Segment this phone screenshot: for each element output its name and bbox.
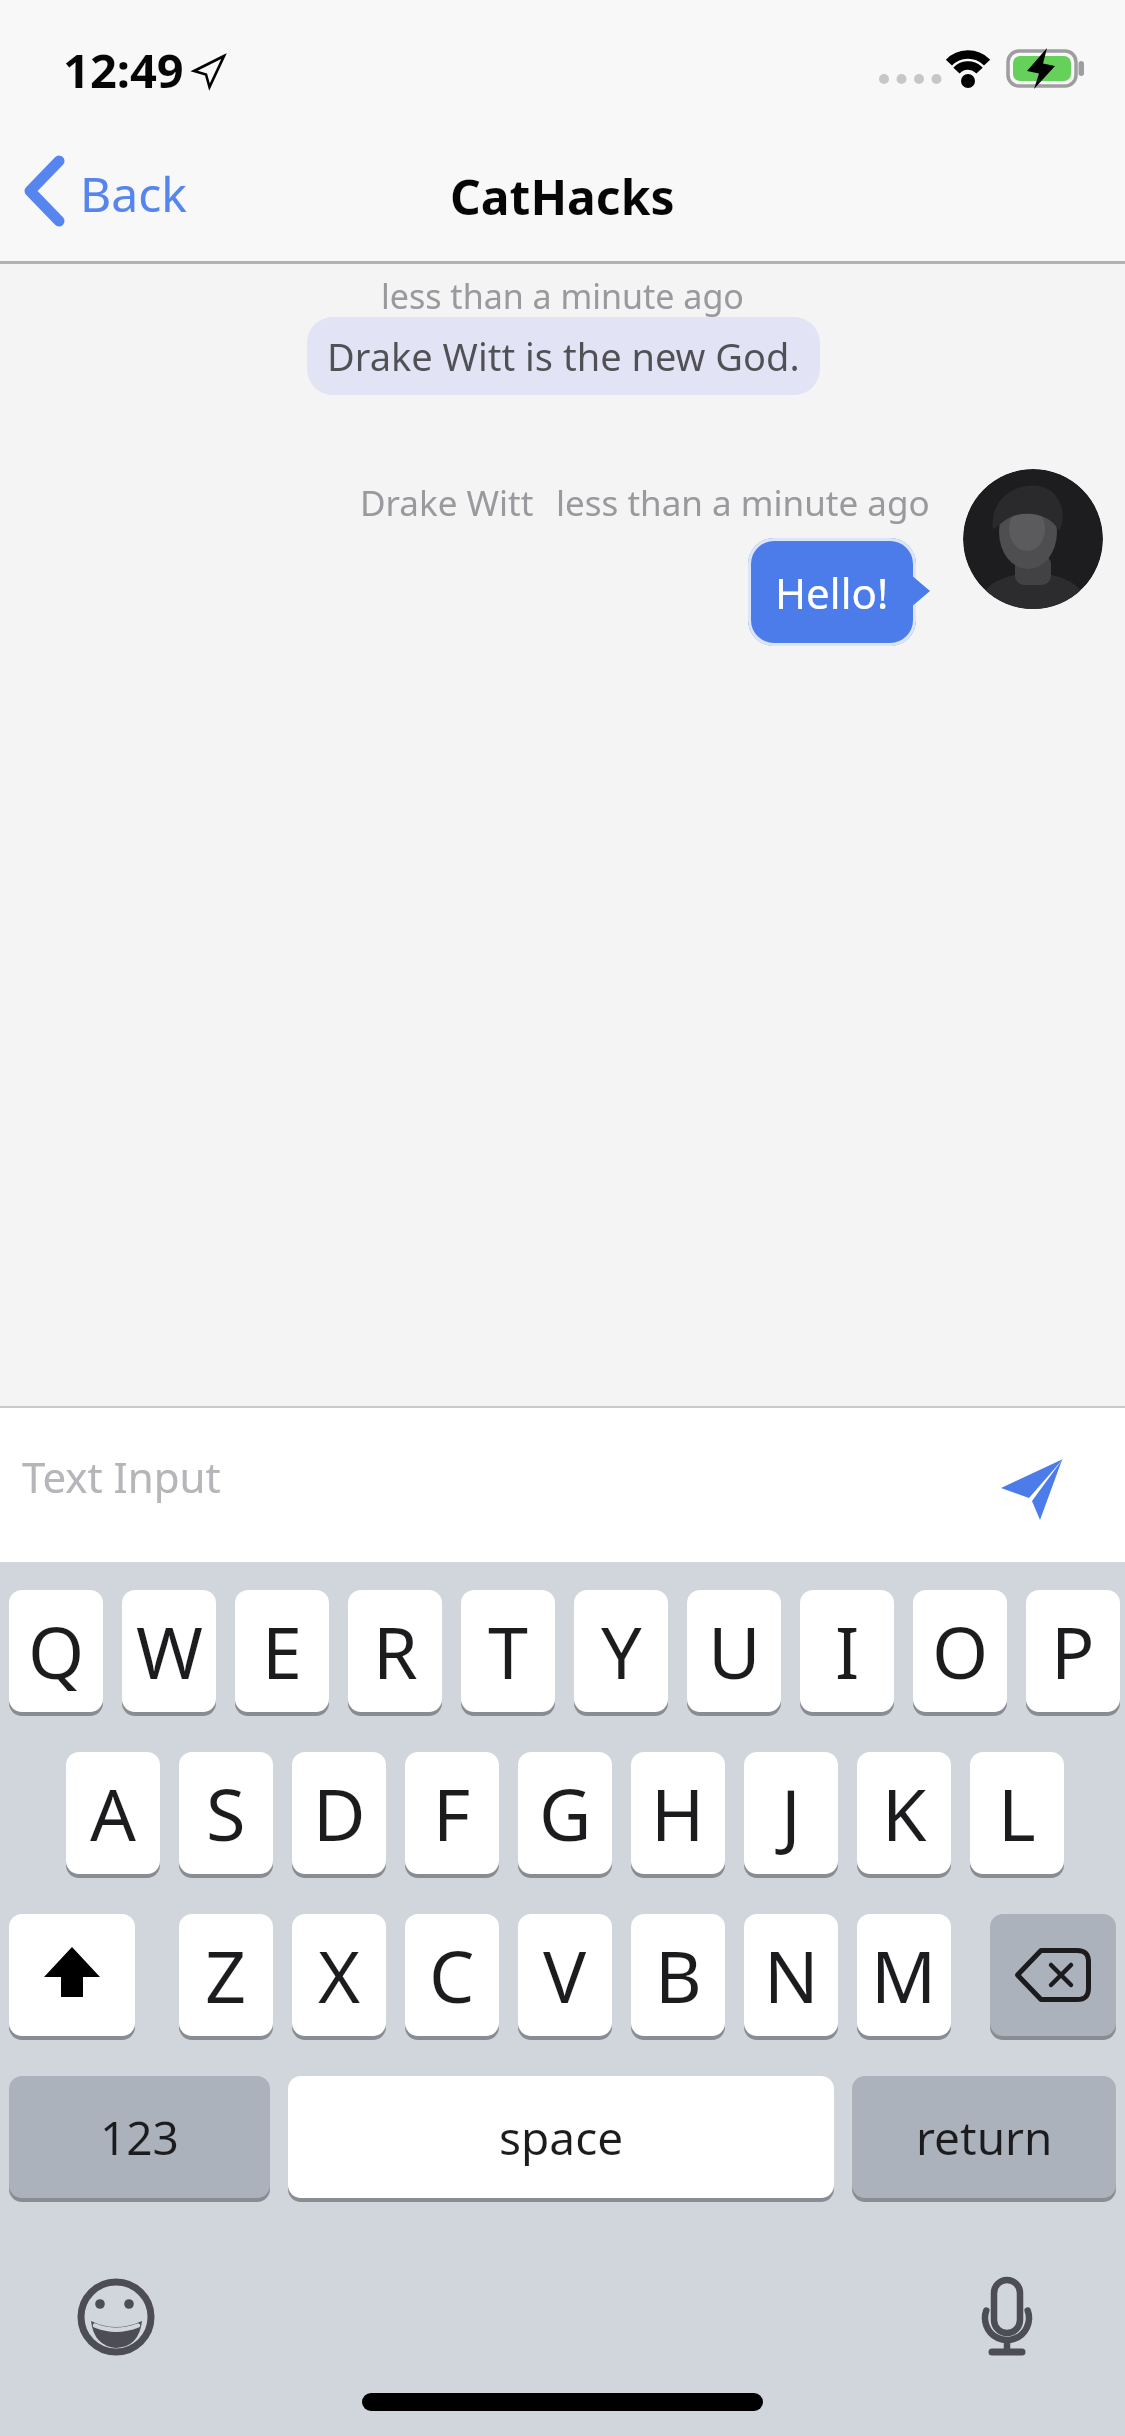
button[interactable]: V bbox=[518, 1914, 612, 2036]
button[interactable]: A bbox=[66, 1752, 160, 1874]
staticText: R bbox=[373, 1602, 418, 1700]
staticText: C bbox=[429, 1926, 475, 2024]
button[interactable]: R bbox=[348, 1590, 442, 1712]
button[interactable]: Back bbox=[20, 150, 220, 240]
staticText: X bbox=[318, 1926, 361, 2024]
staticText: P bbox=[1051, 1602, 1095, 1700]
staticText: Q bbox=[28, 1602, 85, 1700]
button[interactable]: W bbox=[122, 1590, 216, 1712]
button[interactable] bbox=[0, 1406, 1125, 1562]
button[interactable]: G bbox=[518, 1752, 612, 1874]
staticText: W bbox=[136, 1602, 203, 1700]
button[interactable]: B bbox=[631, 1914, 725, 2036]
button[interactable]: return bbox=[852, 2076, 1116, 2198]
staticText: T bbox=[488, 1602, 529, 1700]
staticText: CatHacks bbox=[450, 164, 675, 229]
staticText: return bbox=[916, 2106, 1053, 2169]
button[interactable]: P bbox=[1026, 1590, 1120, 1712]
staticText: K bbox=[882, 1764, 927, 1862]
staticText: less than a minute ago bbox=[381, 273, 744, 319]
staticText: Back bbox=[80, 161, 187, 226]
staticText: less than a minute ago bbox=[556, 479, 930, 527]
staticText: U bbox=[708, 1602, 761, 1700]
staticText: 12:49 bbox=[63, 38, 184, 102]
staticText: G bbox=[539, 1764, 592, 1862]
staticText: H bbox=[651, 1764, 705, 1862]
staticText: A bbox=[90, 1764, 137, 1862]
staticText: E bbox=[262, 1602, 303, 1700]
button[interactable]: Z bbox=[179, 1914, 273, 2036]
button[interactable] bbox=[995, 1455, 1075, 1535]
button[interactable]: X bbox=[292, 1914, 386, 2036]
staticText: J bbox=[781, 1764, 801, 1862]
button[interactable]: C bbox=[405, 1914, 499, 2036]
staticText: Drake Witt bbox=[360, 479, 534, 527]
staticText: I bbox=[835, 1602, 860, 1700]
button[interactable]: space bbox=[288, 2076, 834, 2198]
button[interactable]: J bbox=[744, 1752, 838, 1874]
staticText: V bbox=[543, 1926, 587, 2024]
button[interactable]: U bbox=[687, 1590, 781, 1712]
button[interactable]: Y bbox=[574, 1590, 668, 1712]
button[interactable]: D bbox=[292, 1752, 386, 1874]
button[interactable]: K bbox=[857, 1752, 951, 1874]
staticText: D bbox=[313, 1764, 366, 1862]
staticText: N bbox=[764, 1926, 819, 2024]
button[interactable]: L bbox=[970, 1752, 1064, 1874]
button[interactable]: H bbox=[631, 1752, 725, 1874]
button[interactable]: I bbox=[800, 1590, 894, 1712]
staticText: Y bbox=[601, 1602, 642, 1700]
staticText: L bbox=[998, 1764, 1036, 1862]
button[interactable]: Q bbox=[9, 1590, 103, 1712]
staticText: Drake Witt is the new God. bbox=[327, 330, 800, 382]
button[interactable]: N bbox=[744, 1914, 838, 2036]
button[interactable]: S bbox=[179, 1752, 273, 1874]
staticText: Text Input bbox=[22, 1448, 221, 1505]
button[interactable]: O bbox=[913, 1590, 1007, 1712]
staticText: S bbox=[206, 1764, 246, 1862]
button[interactable]: T bbox=[461, 1590, 555, 1712]
staticText: Z bbox=[205, 1926, 247, 2024]
button[interactable] bbox=[9, 1914, 135, 2036]
staticText: O bbox=[932, 1602, 989, 1700]
staticText: F bbox=[433, 1764, 471, 1862]
staticText: space bbox=[499, 2106, 624, 2169]
button[interactable]: E bbox=[235, 1590, 329, 1712]
button[interactable] bbox=[970, 2270, 1050, 2365]
button[interactable] bbox=[990, 1914, 1116, 2036]
staticText: Hello! bbox=[775, 564, 889, 621]
button[interactable]: F bbox=[405, 1752, 499, 1874]
staticText: 123 bbox=[100, 2106, 179, 2169]
button[interactable] bbox=[75, 2275, 159, 2359]
button[interactable]: 123 bbox=[9, 2076, 270, 2198]
staticText: M bbox=[871, 1926, 937, 2024]
staticText: B bbox=[655, 1926, 702, 2024]
button[interactable]: M bbox=[857, 1914, 951, 2036]
